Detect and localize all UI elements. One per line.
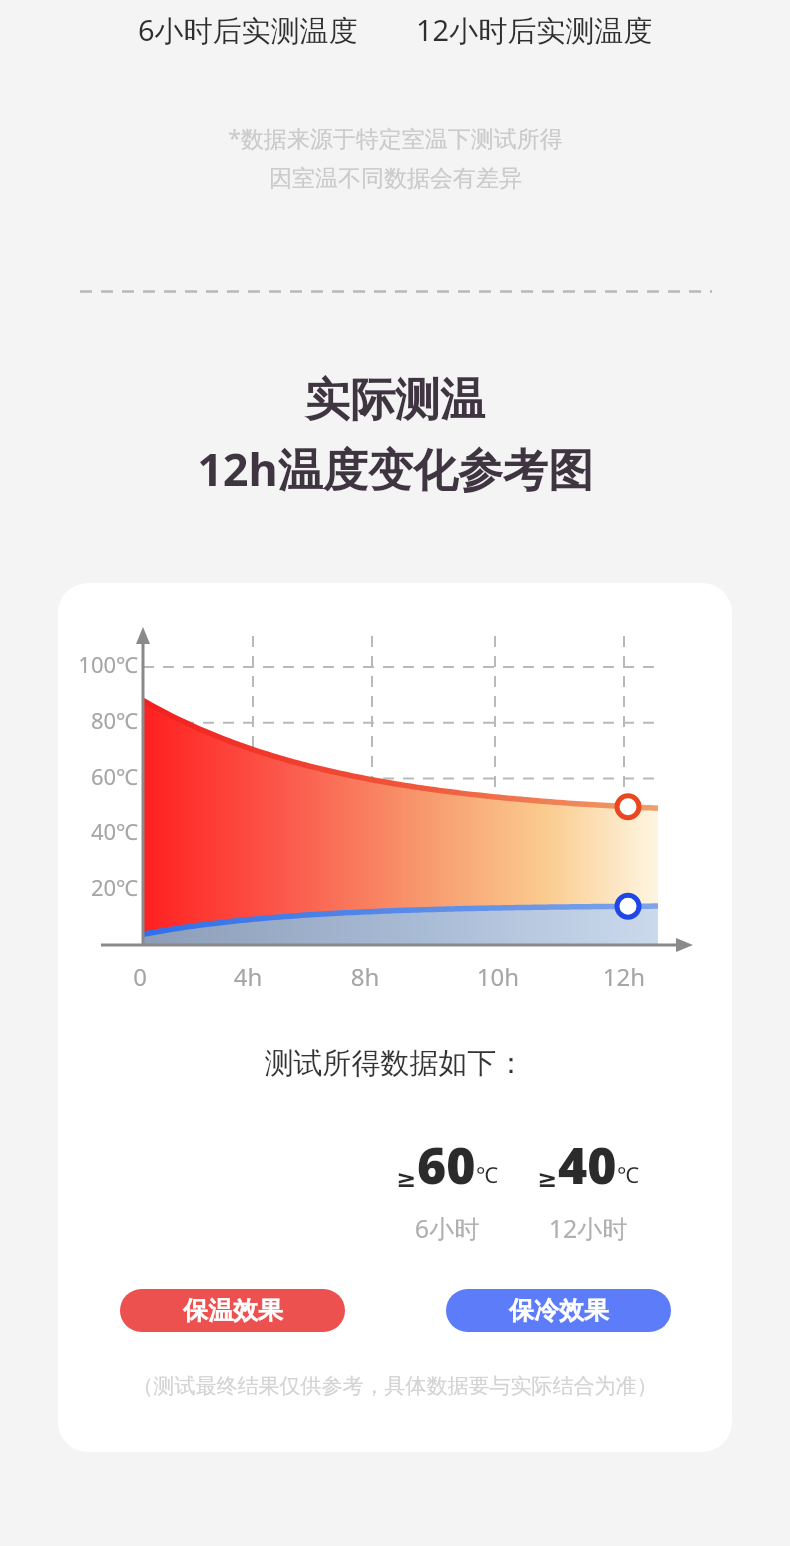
staticText: 6小时: [110, 1211, 732, 1245]
staticText: 60℃: [68, 761, 138, 791]
staticText: 0: [110, 960, 170, 993]
staticText: 80℃: [68, 705, 138, 735]
staticText: 保冷效果: [509, 1295, 609, 1326]
staticText: 40℃: [68, 816, 138, 846]
staticText: 保温效果: [183, 1295, 283, 1326]
staticText: ≥: [537, 1165, 558, 1193]
staticText: 8小时: [503, 1211, 732, 1245]
staticText: 12h: [594, 960, 654, 993]
staticText: （测试最终结果仅供参考，具体数据要与实际结合为准）: [58, 1373, 732, 1399]
staticText: ≥: [396, 1165, 417, 1193]
staticText: 实际测温: [305, 372, 485, 429]
button[interactable]: 保温效果: [120, 1289, 345, 1332]
staticText: 12小时: [251, 1211, 732, 1245]
staticText: ℃: [476, 1159, 498, 1189]
staticText: 12h温度变化参考图: [197, 438, 593, 499]
staticText: 测试所得数据如下：: [58, 1045, 732, 1082]
staticText: 12小时后实测温度: [416, 10, 653, 50]
staticText: 因室温不同数据会有差异: [269, 164, 522, 193]
button[interactable]: 保冷效果: [446, 1289, 671, 1332]
staticText: 4h: [218, 960, 278, 993]
staticText: 10h: [468, 960, 528, 993]
staticText: *数据来源于特定室温下测试所得: [228, 122, 563, 153]
staticText: ℃: [617, 1159, 639, 1189]
staticText: 100℃: [68, 649, 138, 679]
staticText: 40: [558, 1131, 617, 1199]
staticText: 8h: [335, 960, 395, 993]
staticText: 20℃: [68, 872, 138, 902]
staticText: 60: [417, 1131, 476, 1199]
staticText: 6小时后实测温度: [138, 10, 358, 50]
